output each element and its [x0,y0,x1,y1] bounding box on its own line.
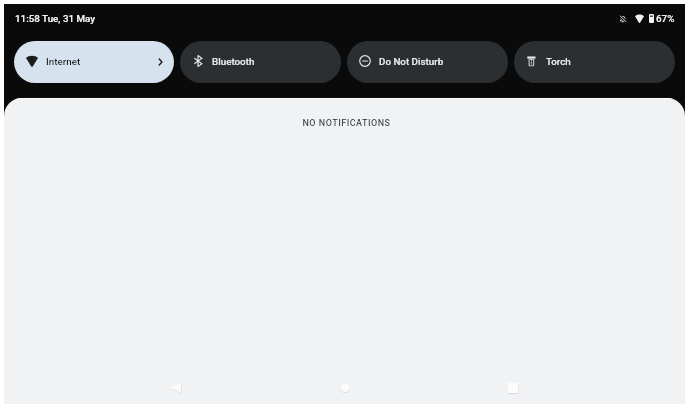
staticText: Internet [46,56,81,67]
staticText: Do Not Disturb [379,56,444,67]
button[interactable]: Bluetooth [180,41,341,83]
button[interactable]: Back [162,374,190,402]
button[interactable]: Do Not Disturb [347,41,508,83]
button[interactable]: Recent apps [499,374,527,402]
staticText: Torch [546,56,571,67]
button[interactable]: Internet [14,41,174,83]
staticText: NO NOTIFICATIONS [6,118,685,129]
button[interactable]: Torch [514,41,675,83]
staticText: 11:58 Tue, 31 May [15,13,96,24]
staticText: 67% [656,13,675,24]
staticText: Bluetooth [212,56,255,67]
button[interactable]: Home [331,374,359,402]
